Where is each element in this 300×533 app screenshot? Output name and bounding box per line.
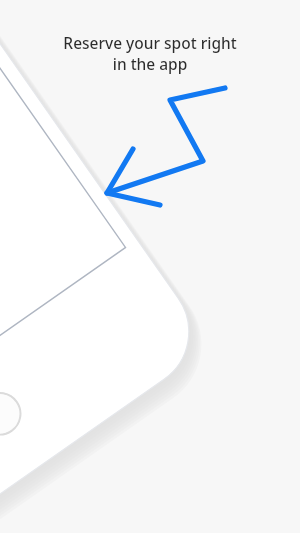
button[interactable]: Reserve your spot right in the app <box>0 0 300 533</box>
